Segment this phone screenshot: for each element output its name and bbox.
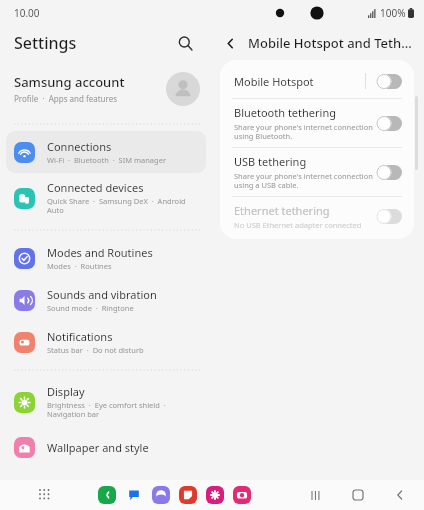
button[interactable]: Connected devices [6, 173, 206, 223]
button[interactable]: Apps [34, 484, 56, 506]
button[interactable]: Back [218, 31, 242, 55]
staticText: Notifications [47, 329, 113, 344]
staticText: Wi-Fi · Bluetooth · SIM manager [47, 155, 166, 165]
button[interactable]: Modes and Routines [6, 237, 206, 279]
button[interactable]: Back [390, 485, 410, 505]
staticText: Connected devices [47, 180, 144, 195]
staticText: Sounds and vibration [47, 287, 157, 302]
button[interactable]: Display [6, 377, 206, 427]
staticText: Profile · Apps and features [14, 93, 118, 104]
button[interactable]: App [125, 486, 143, 504]
staticText: Share your phone's internet connection u… [234, 171, 373, 191]
button[interactable]: App [98, 486, 116, 504]
staticText: Display [47, 384, 85, 399]
button[interactable]: Connections [6, 131, 206, 173]
staticText: Modes and Routines [47, 245, 153, 260]
staticText: Status bar · Do not disturb [47, 345, 144, 355]
staticText: Settings [14, 32, 77, 54]
button[interactable]: Notifications [6, 321, 206, 363]
button[interactable]: Toggle [376, 165, 402, 180]
button[interactable]: Toggle [376, 209, 402, 224]
button[interactable]: App [179, 486, 197, 504]
button[interactable]: Sounds and vibration [6, 279, 206, 321]
staticText: Mobile Hotspot and Tether… [248, 34, 416, 52]
button[interactable]: Wallpaper and style [6, 427, 206, 467]
staticText: Sound mode · Ringtone [47, 303, 134, 313]
staticText: Mobile Hotspot [234, 74, 314, 89]
staticText: No USB Ethernet adapter connected [234, 220, 362, 230]
staticText: Share your phone's internet connection u… [234, 122, 373, 142]
button[interactable]: Ethernet tethering [220, 197, 414, 235]
button[interactable]: Samsung account [0, 60, 212, 117]
staticText: Wallpaper and style [47, 440, 149, 455]
staticText: Connections [47, 139, 112, 154]
button[interactable]: Search [172, 30, 198, 56]
staticText: Bluetooth tethering [234, 105, 336, 120]
button[interactable]: Mobile Hotspot [220, 64, 414, 98]
button[interactable]: App [152, 486, 170, 504]
button[interactable]: Home [348, 485, 368, 505]
staticText: Modes · Routines [47, 261, 112, 271]
button[interactable]: App [233, 486, 251, 504]
button[interactable]: Recents [306, 485, 326, 505]
staticText: Samsung account [14, 73, 125, 91]
staticText: Brightness · Eye comfort shield · Naviga… [47, 400, 166, 420]
button[interactable]: App [206, 486, 224, 504]
staticText: 10.00 [14, 6, 40, 20]
button[interactable]: Toggle [376, 74, 402, 89]
staticText: USB tethering [234, 154, 307, 169]
button[interactable]: Toggle [376, 116, 402, 131]
staticText: Ethernet tethering [234, 203, 330, 218]
button[interactable]: Bluetooth tethering [220, 99, 414, 147]
button[interactable]: USB tethering [220, 148, 414, 196]
staticText: 100% [380, 6, 406, 20]
staticText: Quick Share · Samsung DeX · Android Auto [47, 196, 186, 216]
